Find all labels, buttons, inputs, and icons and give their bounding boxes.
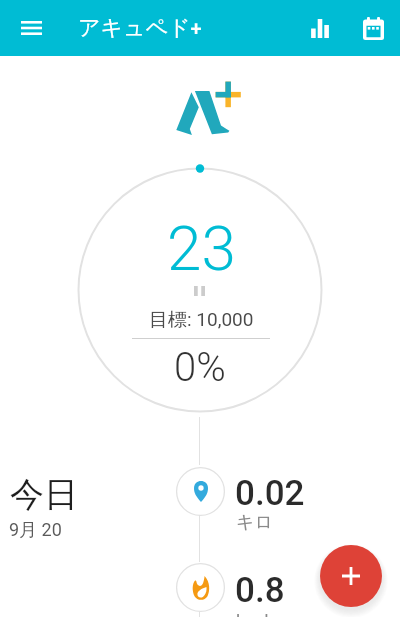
staticText: 今日 — [10, 473, 78, 516]
staticText: アキュペド+ — [78, 14, 202, 42]
staticText: 目標: 10,000 — [149, 308, 254, 332]
button[interactable]: Add — [320, 545, 382, 607]
staticText: 9月 20 — [9, 519, 62, 542]
staticText: 23 — [167, 212, 236, 285]
staticText: 0% — [174, 344, 226, 391]
button[interactable]: Statistics — [296, 0, 344, 56]
button[interactable]: Menu — [0, 0, 62, 56]
button[interactable]: Calendar — [349, 0, 397, 56]
staticText: 0.02 — [235, 473, 305, 514]
button[interactable]: 0.02 — [150, 457, 330, 525]
staticText: kcal — [236, 611, 269, 617]
staticText: キロ — [236, 511, 273, 534]
button[interactable]: 0.8 — [150, 553, 330, 617]
staticText: 0.8 — [235, 570, 285, 611]
